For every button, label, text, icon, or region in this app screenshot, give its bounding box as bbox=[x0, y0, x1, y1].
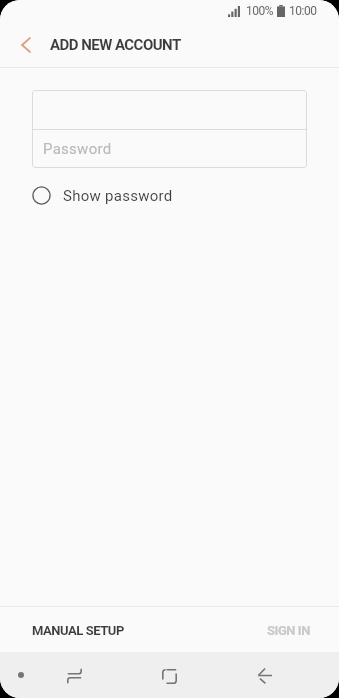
button[interactable]: Password bbox=[32, 130, 307, 168]
staticText: MANUAL SETUP bbox=[32, 623, 124, 638]
button[interactable]: Home bbox=[122, 654, 217, 698]
button[interactable]: Navigate up bbox=[6, 22, 46, 67]
staticText: ADD NEW ACCOUNT bbox=[50, 36, 181, 54]
button[interactable]: Show password bbox=[32, 182, 173, 209]
button[interactable]: SIGN IN bbox=[169, 607, 339, 652]
staticText: Show password bbox=[63, 187, 173, 205]
staticText: 100% bbox=[246, 4, 274, 18]
staticText: 10:00 bbox=[289, 4, 317, 18]
button[interactable]: Hide keyboard bbox=[3, 652, 39, 698]
staticText: SIGN IN bbox=[267, 623, 310, 638]
staticText: Password bbox=[43, 140, 112, 158]
button[interactable]: Back bbox=[217, 654, 312, 698]
button[interactable] bbox=[32, 90, 307, 129]
button[interactable]: MANUAL SETUP bbox=[0, 607, 169, 652]
button[interactable]: Recents bbox=[27, 654, 122, 698]
